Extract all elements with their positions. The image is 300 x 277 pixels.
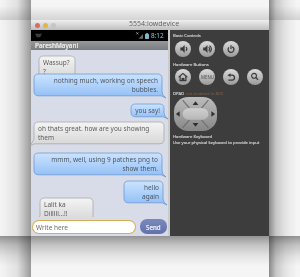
button[interactable]: Wassup?? <box>35 56 75 80</box>
staticText: Hardware Keyboard <box>173 134 213 140</box>
button[interactable]: you say! <box>131 104 168 119</box>
staticText: DPAD <box>173 91 186 97</box>
button[interactable]: Power <box>223 41 239 57</box>
button[interactable]: MENU <box>199 69 215 85</box>
button[interactable]: Volume down <box>175 41 191 57</box>
button[interactable]: Write here <box>33 221 135 233</box>
staticText: not enabled in AVD <box>186 91 224 97</box>
staticText: Send <box>146 223 161 231</box>
staticText: Hardware Buttons <box>173 62 209 68</box>
staticText: you say! <box>135 106 160 115</box>
staticText: Basic Controls <box>173 33 201 39</box>
staticText: Use your physical keyboard to provide in… <box>173 140 260 146</box>
button[interactable]: Send <box>140 219 167 234</box>
staticText: oh thats great. how are you showing them <box>38 124 160 142</box>
staticText: Write here <box>36 223 68 232</box>
button[interactable]: Lalit ka Dilllll...!! <box>36 198 93 222</box>
button[interactable]: hello again <box>124 181 167 205</box>
button[interactable]: Volume up <box>199 41 215 57</box>
staticText: PareshMayani <box>35 41 79 50</box>
button[interactable]: D-Pad <box>174 97 217 131</box>
staticText: Wassup?? <box>43 58 71 76</box>
staticText: nothing much, working on speech bubbles. <box>38 76 158 94</box>
button[interactable]: mmm, well, using 9 patches png to show t… <box>34 153 166 177</box>
staticText: Lalit ka Dilllll...!! <box>44 200 89 218</box>
button[interactable]: Home <box>175 69 191 85</box>
button[interactable]: nothing much, working on speech bubbles. <box>34 74 166 98</box>
button[interactable]: Search <box>247 69 263 85</box>
button[interactable]: Back <box>223 69 239 85</box>
staticText: 5554:lowdevice <box>129 19 180 29</box>
staticText: mmm, well, using 9 patches png to show t… <box>38 155 158 173</box>
staticText: hello again <box>128 183 159 201</box>
staticText: 8:12 <box>151 31 164 40</box>
staticText: MENU <box>201 74 214 80</box>
button[interactable]: oh thats great. how are you showing them <box>30 122 164 146</box>
